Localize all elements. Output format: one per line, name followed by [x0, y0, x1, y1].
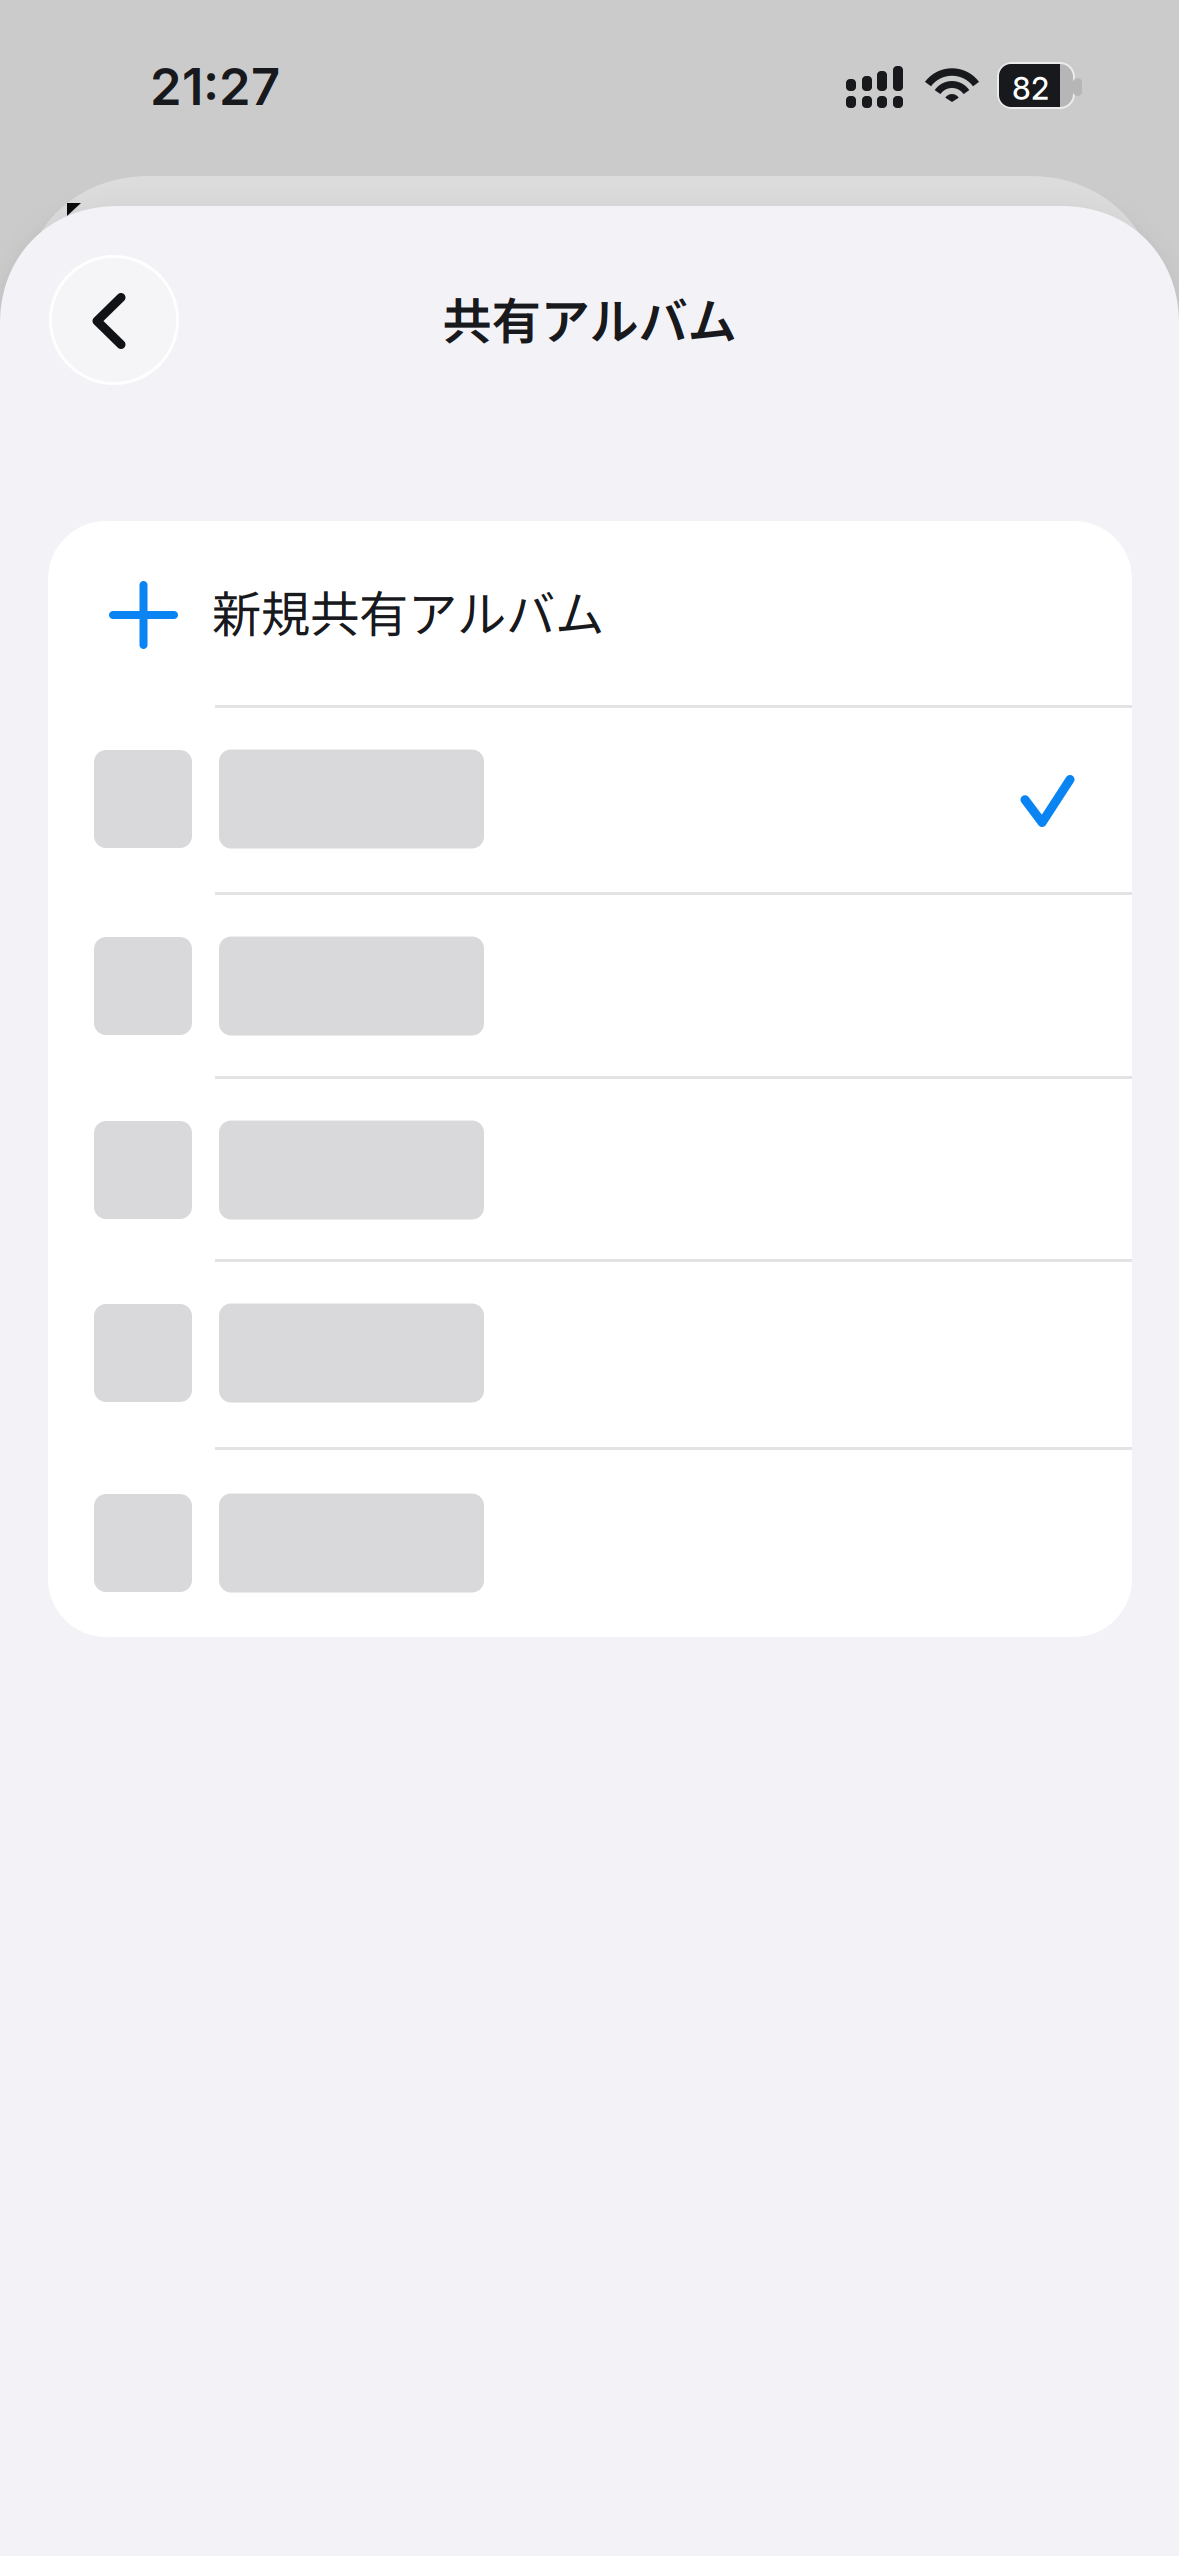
button[interactable]: Shared album: [48, 893, 1132, 1079]
staticText: 82: [1012, 70, 1049, 107]
button[interactable]: Shared album: [48, 1260, 1132, 1446]
staticText: 新規共有アルバム: [212, 575, 604, 646]
button[interactable]: Shared album: [48, 1448, 1132, 1638]
button[interactable]: 新規共有アルバム: [48, 521, 1132, 705]
button[interactable]: Shared album: [48, 1077, 1132, 1263]
button[interactable]: Back: [49, 255, 179, 385]
staticText: 21:27: [150, 56, 280, 117]
staticText: 共有アルバム: [442, 282, 736, 354]
button[interactable]: Shared album: [48, 706, 1132, 892]
